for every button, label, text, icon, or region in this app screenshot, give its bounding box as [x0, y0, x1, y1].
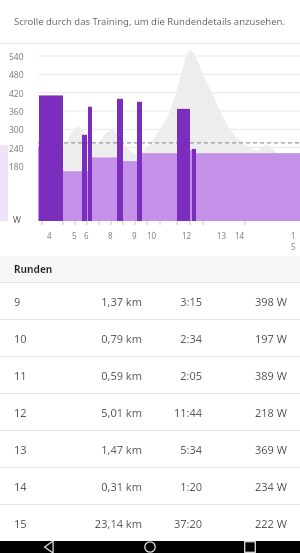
staticText: 23,14 km — [72, 516, 142, 531]
staticText: 222 W — [202, 516, 287, 531]
staticText: 15 — [14, 516, 72, 531]
staticText: 14 — [14, 479, 72, 494]
staticText: 5,01 km — [72, 405, 142, 420]
button[interactable]: Home — [100, 541, 200, 553]
staticText: 3:15 — [142, 294, 202, 309]
staticText: 234 W — [202, 479, 287, 494]
staticText: 0,31 km — [72, 479, 142, 494]
button[interactable]: Recent apps — [200, 541, 300, 553]
staticText: 540 — [9, 51, 24, 63]
staticText: 197 W — [202, 331, 287, 346]
button[interactable]: Scrolle durch das Training, um die Runde… — [0, 0, 300, 43]
staticText: 0,79 km — [72, 331, 142, 346]
button[interactable]: 10 — [0, 320, 300, 356]
staticText: 8 — [108, 230, 113, 241]
staticText: 1,47 km — [72, 442, 142, 457]
staticText: 6 — [84, 230, 89, 241]
staticText: 1,37 km — [72, 294, 142, 309]
staticText: 5 — [72, 230, 77, 241]
staticText: 9 — [14, 294, 72, 309]
staticText: 12 — [14, 405, 72, 420]
staticText: 14 — [235, 230, 245, 241]
staticText: 10 — [147, 230, 157, 241]
button[interactable]: 12 — [0, 394, 300, 430]
button[interactable]: 14 — [0, 468, 300, 504]
staticText: 218 W — [202, 405, 287, 420]
staticText: 389 W — [202, 368, 287, 383]
staticText: 0,59 km — [72, 368, 142, 383]
staticText: 240 — [9, 143, 24, 155]
staticText: 360 — [9, 106, 24, 118]
button[interactable]: 11 — [0, 357, 300, 393]
staticText: 13 — [217, 230, 227, 241]
staticText: Runden — [14, 262, 53, 276]
button[interactable]: 15 — [0, 505, 300, 541]
staticText: Scrolle durch das Training, um die Runde… — [14, 15, 285, 28]
button[interactable]: 13 — [0, 431, 300, 467]
staticText: 369 W — [202, 442, 287, 457]
staticText: 15 — [291, 230, 300, 252]
staticText: 180 — [9, 161, 24, 173]
staticText: 10 — [14, 331, 72, 346]
staticText: 1:20 — [142, 479, 202, 494]
staticText: 420 — [9, 88, 24, 100]
staticText: 5:34 — [142, 442, 202, 457]
staticText: 11 — [14, 368, 72, 383]
staticText: 2:05 — [142, 368, 202, 383]
staticText: 398 W — [202, 294, 287, 309]
staticText: 2:34 — [142, 331, 202, 346]
staticText: 300 — [9, 124, 24, 136]
staticText: 480 — [9, 69, 24, 81]
staticText: 4 — [47, 230, 52, 241]
button[interactable]: 9 — [0, 283, 300, 319]
staticText: 37:20 — [142, 516, 202, 531]
staticText: 11:44 — [142, 405, 202, 420]
staticText: 9 — [132, 230, 137, 241]
staticText: 12 — [182, 230, 192, 241]
staticText: W — [13, 214, 21, 226]
button[interactable]: Back — [0, 541, 100, 553]
staticText: 13 — [14, 442, 72, 457]
